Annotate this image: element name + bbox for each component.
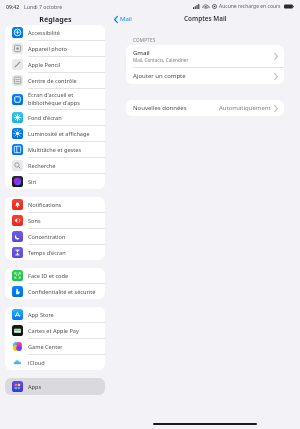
staticText: Accessibilité xyxy=(28,29,60,37)
staticText: Notifications xyxy=(28,201,62,209)
staticText: Multitâche et gestes xyxy=(28,146,82,154)
staticText: Concentration xyxy=(28,233,66,241)
staticText: Aucune recharge en cours xyxy=(219,3,281,10)
staticText: Mail xyxy=(120,15,132,23)
button[interactable]: Accessibilité xyxy=(5,25,105,40)
staticText: Écran d'accueil et xyxy=(28,91,74,99)
staticText: Lundi 7 octobre xyxy=(24,3,63,10)
button[interactable]: Siri xyxy=(5,174,105,189)
button[interactable]: Nouvelles données xyxy=(126,100,284,116)
staticText: Sons xyxy=(28,217,41,225)
staticText: App Store xyxy=(28,311,54,319)
button[interactable]: Temps d'écran xyxy=(5,245,105,260)
staticText: Siri xyxy=(28,178,37,186)
staticText: Mail, Contacts, Calendrier xyxy=(133,57,189,63)
staticText: Temps d'écran xyxy=(28,249,66,257)
button[interactable]: Sons xyxy=(5,213,105,228)
staticText: Nouvelles données xyxy=(133,104,187,112)
staticText: Réglages xyxy=(39,14,72,24)
staticText: bibliothèque d'apps xyxy=(28,99,80,107)
staticText: Appareil photo xyxy=(28,45,67,53)
staticText: Gmail xyxy=(133,49,150,57)
staticText: 09:42 xyxy=(6,3,20,10)
button[interactable]: Cartes et Apple Pay xyxy=(5,323,105,338)
button[interactable]: Face ID et code xyxy=(5,268,105,283)
staticText: iCloud xyxy=(28,359,45,367)
staticText: Fond d'écran xyxy=(28,114,62,122)
staticText: Cartes et Apple Pay xyxy=(28,327,79,335)
staticText: Apple Pencil xyxy=(28,61,61,69)
button[interactable]: Ajouter un compte xyxy=(126,68,284,84)
staticText: Game Center xyxy=(28,343,63,351)
button[interactable]: Recherche xyxy=(5,158,105,173)
button[interactable]: Fond d'écran xyxy=(5,110,105,125)
button[interactable]: Game Center xyxy=(5,339,105,354)
button[interactable]: Multitâche et gestes xyxy=(5,142,105,157)
button[interactable]: Gmail xyxy=(126,45,284,67)
button[interactable]: Apple Pencil xyxy=(5,57,105,72)
staticText: Face ID et code xyxy=(28,272,69,280)
button[interactable]: Confidentialité et sécurité xyxy=(5,284,105,299)
staticText: Recherche xyxy=(28,162,56,170)
button[interactable]: Apps xyxy=(5,378,105,395)
button[interactable]: App Store xyxy=(5,307,105,322)
button[interactable]: Appareil photo xyxy=(5,41,105,56)
staticText: Comptes Mail xyxy=(184,14,227,23)
staticText: COMPTES xyxy=(133,37,156,43)
button[interactable]: iCloud xyxy=(5,355,105,370)
staticText: Centre de contrôle xyxy=(28,77,77,85)
staticText: Confidentialité et sécurité xyxy=(28,288,96,296)
button[interactable]: Concentration xyxy=(5,229,105,244)
button[interactable]: Centre de contrôle xyxy=(5,73,105,88)
button[interactable]: Mail xyxy=(110,13,137,25)
staticText: Luminosité et affichage xyxy=(28,130,90,138)
button[interactable]: Notifications xyxy=(5,197,105,212)
button[interactable]: Écran d'accueil et xyxy=(5,89,105,109)
staticText: Ajouter un compte xyxy=(133,72,186,80)
staticText: Apps xyxy=(28,383,42,391)
staticText: Automatiquement xyxy=(219,104,271,112)
button[interactable]: Luminosité et affichage xyxy=(5,126,105,141)
